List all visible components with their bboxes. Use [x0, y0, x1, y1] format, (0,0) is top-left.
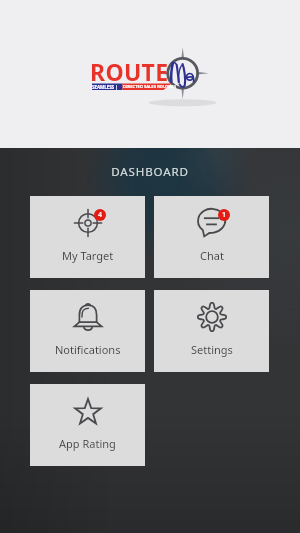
- staticText: 1: [222, 210, 227, 220]
- staticText: Notifications: [55, 342, 121, 357]
- staticText: Chat: [200, 248, 224, 263]
- staticText: 4: [98, 210, 103, 220]
- staticText: SEAMLESS | DAILY: [92, 84, 123, 90]
- staticText: DIRECTED SALES ROUTING: [123, 84, 164, 90]
- staticText: Settings: [191, 342, 233, 357]
- button[interactable]: Notifications: [30, 290, 145, 372]
- button[interactable]: Settings: [154, 290, 269, 372]
- staticText: App Rating: [59, 436, 116, 451]
- button[interactable]: App Rating: [30, 384, 145, 466]
- button[interactable]: 1: [154, 196, 269, 278]
- staticText: ROUTE: [90, 56, 169, 87]
- staticText: DASHBOARD: [0, 164, 300, 180]
- staticText: My Target: [62, 248, 114, 263]
- button[interactable]: 4: [30, 196, 145, 278]
